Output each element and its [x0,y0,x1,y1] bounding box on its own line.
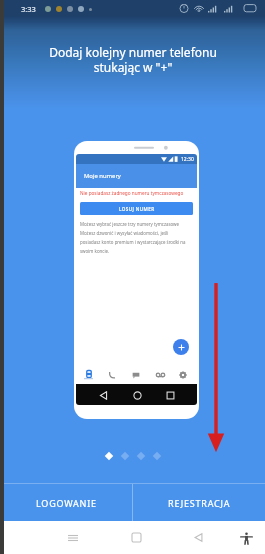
button[interactable]: Page [121,452,129,460]
staticText: Dodaj kolejny numer telefonu stukając w … [49,44,217,75]
button[interactable]: Voicemail [150,365,170,384]
button[interactable]: Messages [126,365,146,384]
staticText: LOGOWANIE [36,497,97,509]
button[interactable]: Page [153,452,161,460]
staticText: LOSUJ NUMER [119,206,155,212]
button[interactable]: Accessibility [236,528,256,548]
button[interactable]: Recent apps [62,521,83,554]
button[interactable]: Back [97,389,109,401]
button[interactable]: LOGOWANIE [0,484,132,521]
staticText: Moje numery [84,172,121,180]
button[interactable]: Home [131,389,143,401]
button[interactable]: Add number [173,339,189,355]
staticText: 3:33 [21,4,36,14]
staticText: REJESTRACJA [168,497,231,509]
button[interactable]: LOSUJ NUMER [80,202,193,215]
button[interactable]: Numbers [78,365,98,384]
button[interactable]: Settings [173,365,193,384]
button[interactable]: Calls [102,365,122,384]
staticText: 12:30 [181,156,194,163]
button[interactable]: Home [126,521,146,554]
staticText: Możesz wybrać jeszcze trzy numery tymcza… [80,221,193,254]
button[interactable]: REJESTRACJA [133,484,265,521]
button[interactable]: Page 1 [105,452,113,460]
button[interactable]: Back [188,521,209,554]
staticText: Nie posiadasz żadnego numeru tymczasoweg… [80,190,193,196]
button[interactable]: Page [137,452,145,460]
button[interactable]: Recent apps [164,389,176,401]
